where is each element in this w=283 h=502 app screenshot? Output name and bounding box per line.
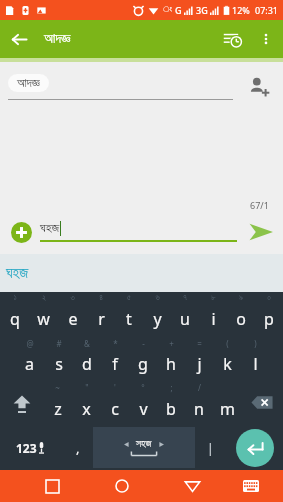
staticText: ঘহজ (6, 266, 29, 281)
button[interactable]: ০ (255, 292, 283, 336)
staticText: q (10, 308, 20, 330)
staticText: G (175, 4, 182, 16)
button[interactable]: আদজ্ঞ (17, 77, 40, 89)
button[interactable]: @ (15, 336, 44, 380)
staticText: m (220, 398, 235, 420)
staticText: + (169, 338, 174, 349)
staticText: ৩ (70, 294, 75, 302)
staticText: ং (163, 6, 172, 14)
button[interactable]: Send (243, 214, 279, 250)
staticText: = (197, 338, 202, 349)
staticText: ৫ (127, 294, 131, 302)
button[interactable]: ১ (0, 292, 29, 336)
staticText: x (82, 398, 91, 420)
button[interactable]: ৮ (199, 292, 227, 336)
button[interactable]: ( (213, 336, 241, 380)
staticText: & (84, 338, 90, 349)
button[interactable]: m (213, 380, 241, 425)
staticText: 12% (232, 4, 250, 16)
button[interactable]: - (129, 336, 157, 380)
staticText: a (25, 353, 34, 375)
staticText: ৬ (155, 294, 160, 302)
button[interactable]: ৫ (115, 292, 143, 336)
staticText: ~ (55, 382, 60, 393)
button[interactable]: ° (129, 380, 157, 425)
staticText: / (198, 382, 201, 393)
button[interactable]: + (157, 336, 185, 380)
staticText: আদজ্ঞ (44, 32, 71, 46)
button[interactable]: ৭ (171, 292, 199, 336)
staticText: u (180, 308, 190, 330)
staticText: e (68, 308, 78, 330)
button[interactable]: = (185, 336, 213, 380)
button[interactable]: Enter (236, 429, 274, 467)
button[interactable]: , (62, 425, 93, 470)
button[interactable]: & (73, 336, 101, 380)
staticText: আদজ্ঞ (17, 77, 40, 89)
staticText: , (76, 439, 80, 457)
button[interactable]: ৩ (58, 292, 87, 336)
button[interactable]: | (195, 425, 226, 470)
staticText: ) (254, 338, 257, 349)
button[interactable]: Add contact (241, 69, 277, 105)
staticText: ৭ (183, 294, 187, 302)
button[interactable]: Home (107, 471, 137, 501)
button[interactable]: ৪ (87, 292, 115, 336)
staticText: n (194, 398, 204, 420)
button[interactable]: ' (101, 380, 129, 425)
staticText: - (142, 338, 145, 349)
staticText: w (37, 308, 50, 330)
button[interactable]: Back (0, 20, 38, 58)
staticText: # (56, 338, 62, 349)
button[interactable]: ঘহজ (6, 266, 29, 281)
staticText: ৯ (239, 294, 243, 302)
staticText: i (211, 308, 216, 330)
button[interactable]: * (101, 336, 129, 380)
button[interactable]: ২ (29, 292, 58, 336)
staticText: 3G (196, 4, 208, 16)
button[interactable]: " (72, 380, 101, 425)
button[interactable]: Recents (37, 471, 67, 501)
staticText: z (54, 398, 62, 420)
staticText: | (207, 440, 214, 456)
staticText: ' (114, 382, 116, 393)
button[interactable]: ) (241, 336, 269, 380)
staticText: ১ (13, 294, 17, 302)
button[interactable]: Backspace (241, 380, 283, 425)
staticText: c (111, 398, 119, 420)
button[interactable]: History (213, 20, 251, 58)
button[interactable]: Add attachment (6, 217, 36, 247)
staticText: সহজ (136, 439, 152, 449)
staticText: 67/1 (250, 199, 269, 211)
button[interactable]: / (185, 380, 213, 425)
staticText: j (197, 353, 202, 375)
button[interactable]: ৬ (143, 292, 171, 336)
button[interactable]: ~ (43, 380, 72, 425)
staticText: y (153, 308, 162, 330)
staticText: ( (226, 338, 229, 349)
button[interactable]: More options (251, 24, 281, 54)
staticText: t (126, 308, 132, 330)
button[interactable]: Hide keyboard (236, 471, 266, 501)
staticText: " (85, 382, 89, 393)
staticText: @ (26, 338, 34, 349)
staticText: l (253, 353, 258, 375)
button[interactable]: Space (93, 427, 195, 468)
staticText: b (166, 398, 176, 420)
staticText: f (112, 353, 118, 375)
staticText: s (55, 353, 63, 375)
staticText: ঘহজ (40, 222, 60, 235)
staticText: r (98, 308, 105, 330)
button[interactable]: ঘহজ (40, 221, 237, 236)
staticText: 123 (16, 440, 37, 456)
button[interactable]: 123 (0, 425, 62, 470)
button[interactable]: Shift (0, 380, 43, 425)
button[interactable]: # (44, 336, 73, 380)
staticText: v (139, 398, 148, 420)
button[interactable]: Back (177, 471, 207, 501)
staticText: ° (141, 382, 145, 393)
button[interactable]: ৯ (227, 292, 255, 336)
staticText: 07:31 (255, 4, 279, 16)
button[interactable]: ; (157, 380, 185, 425)
staticText: * (113, 338, 118, 349)
